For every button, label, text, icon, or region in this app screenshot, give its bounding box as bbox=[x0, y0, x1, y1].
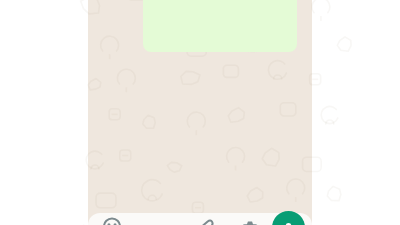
button[interactable]: Camera bbox=[240, 214, 260, 225]
button[interactable]: Attach bbox=[196, 214, 216, 225]
button[interactable]: Emoji bbox=[102, 214, 122, 225]
button[interactable]: Voice message bbox=[272, 211, 305, 225]
